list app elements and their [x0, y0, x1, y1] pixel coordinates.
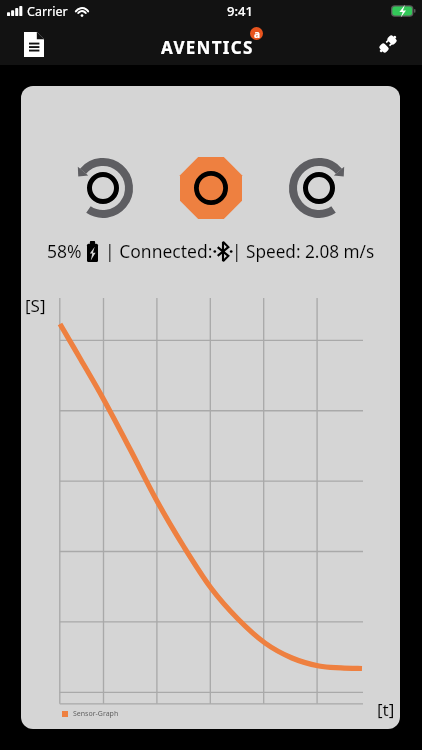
staticText: | Connected: [105, 239, 213, 263]
button[interactable]: Rotate counter-clockwise [67, 152, 139, 224]
button[interactable]: Connect device [370, 26, 406, 62]
staticText: a [254, 27, 260, 40]
button[interactable]: Reports [16, 26, 52, 62]
staticText: | Speed: 2.08 m/s [232, 240, 375, 263]
staticText: [t] [377, 698, 395, 721]
staticText: 58% [47, 239, 82, 263]
staticText: [S] [25, 294, 46, 317]
staticText: Sensor-Graph [73, 709, 119, 719]
staticText: Carrier [27, 3, 68, 20]
button[interactable]: Stop [175, 152, 247, 224]
staticText: AVENTICS [161, 36, 254, 59]
staticText: 9:41 [227, 2, 253, 20]
button[interactable]: Rotate clockwise [283, 152, 355, 224]
